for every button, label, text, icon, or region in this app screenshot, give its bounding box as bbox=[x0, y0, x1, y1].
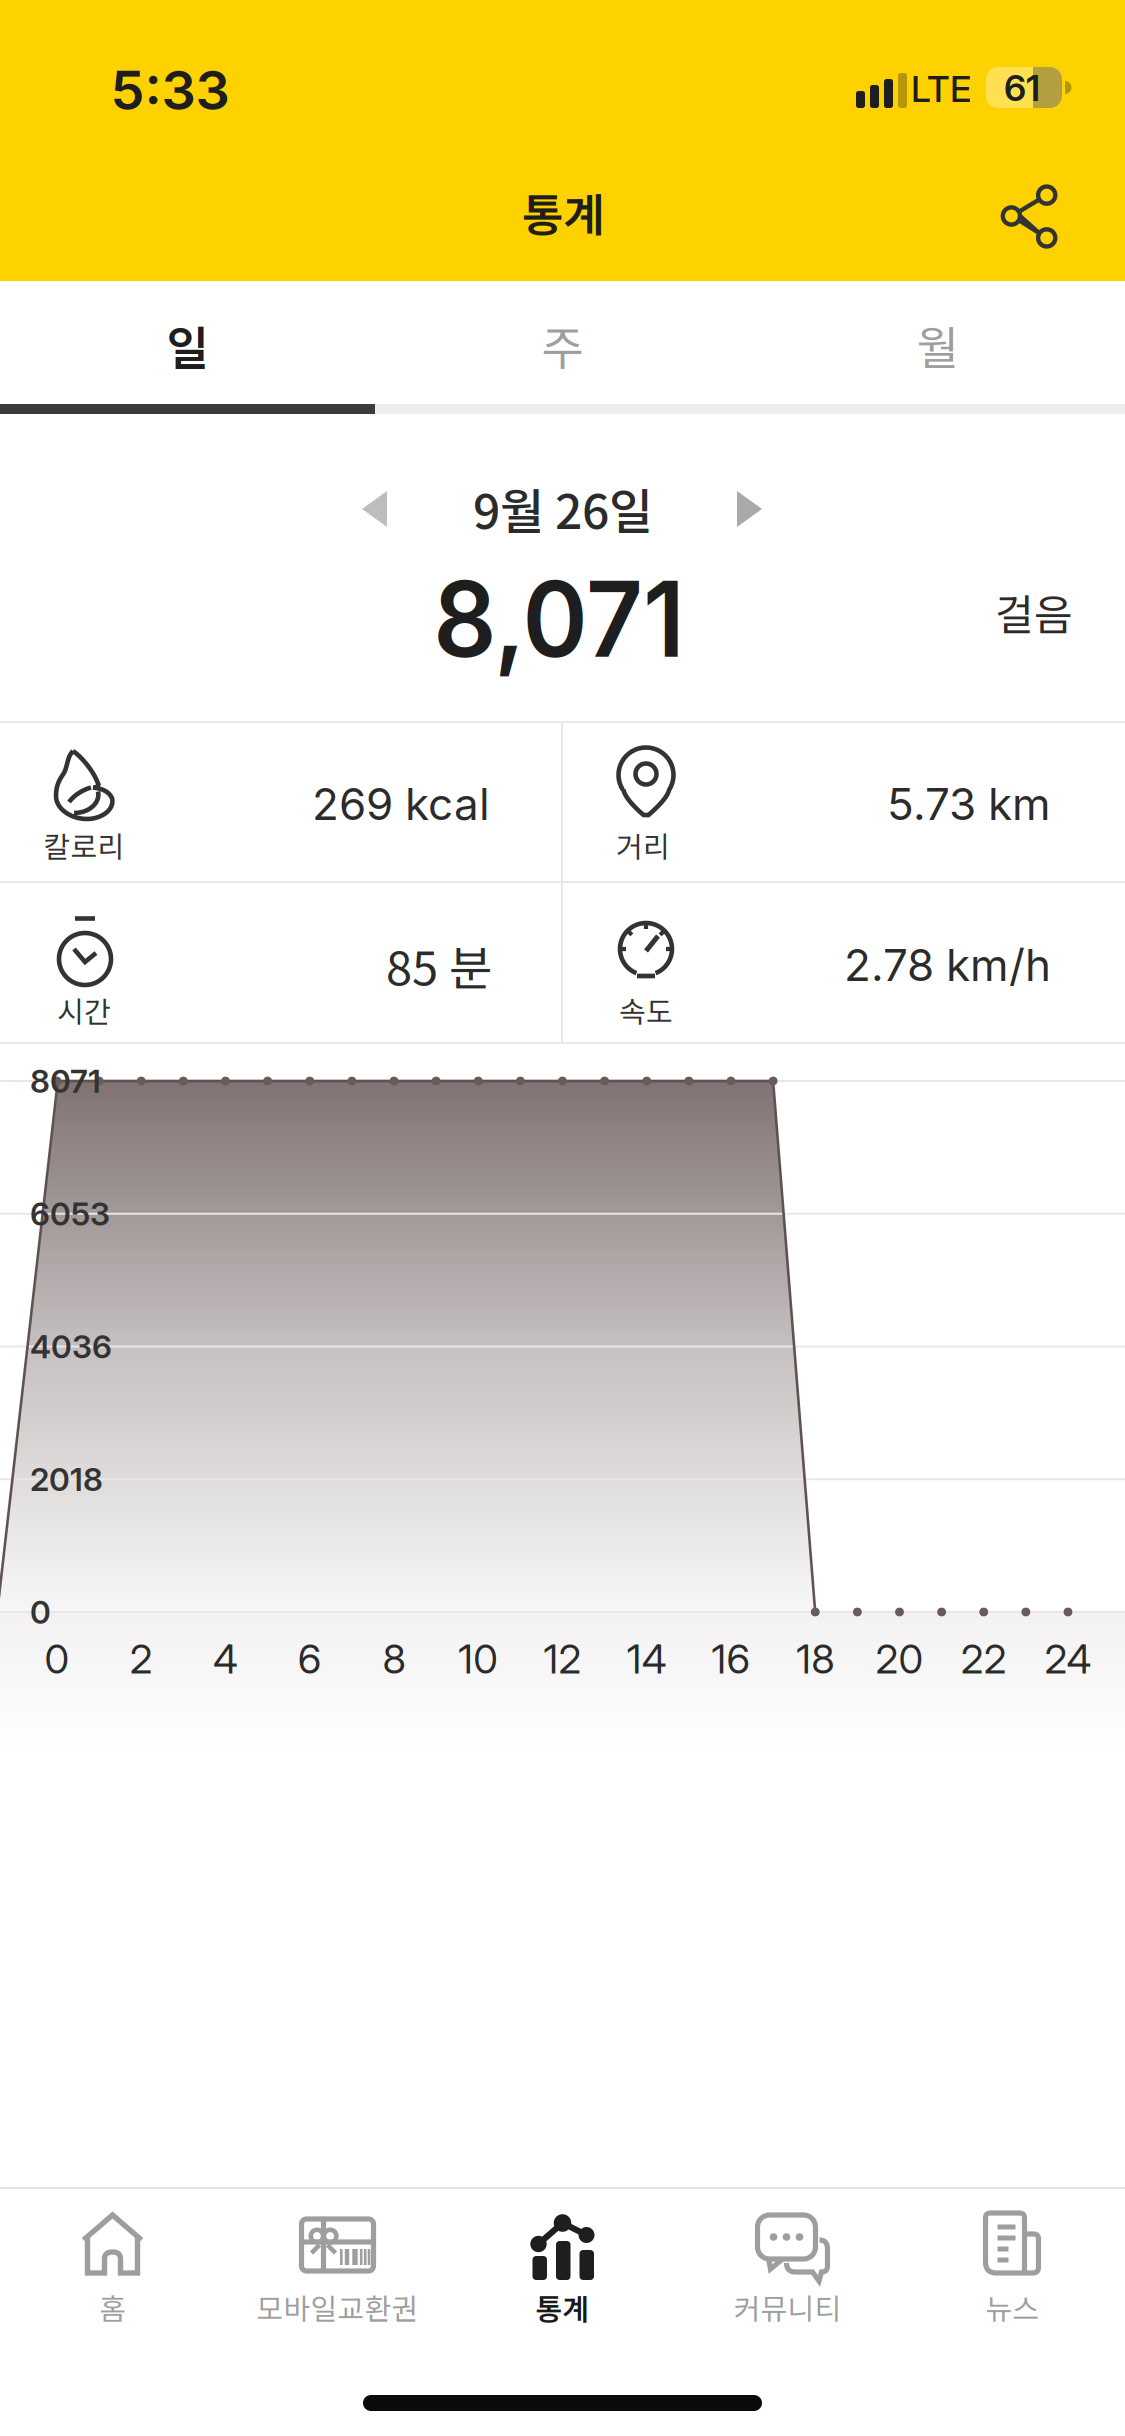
staticText: 2 bbox=[130, 1635, 153, 1683]
staticText: 6053 bbox=[30, 1194, 110, 1233]
button[interactable]: 주 bbox=[375, 284, 750, 406]
staticText: 16 bbox=[711, 1635, 750, 1683]
staticText: 10 bbox=[458, 1635, 498, 1683]
staticText: 20 bbox=[875, 1635, 923, 1683]
staticText: 거리 bbox=[616, 824, 670, 866]
staticText: 걸음 bbox=[995, 582, 1073, 642]
button[interactable]: 월 bbox=[750, 284, 1125, 406]
staticText: 월 bbox=[916, 312, 958, 378]
button[interactable]: Share bbox=[997, 183, 1061, 249]
staticText: LTE bbox=[911, 67, 971, 111]
button[interactable]: 홈 bbox=[0, 2199, 237, 2337]
button[interactable]: Previous day bbox=[361, 489, 389, 529]
staticText: 8071 bbox=[30, 1062, 101, 1100]
staticText: 6 bbox=[298, 1635, 322, 1683]
staticText: 일 bbox=[166, 312, 208, 378]
staticText: 269 kcal bbox=[312, 777, 490, 831]
staticText: 통계 bbox=[522, 179, 604, 245]
staticText: 시간 bbox=[57, 989, 111, 1031]
button[interactable]: 모바일교환권 bbox=[212, 2199, 462, 2337]
staticText: 5:33 bbox=[110, 57, 229, 123]
staticText: 홈 bbox=[99, 2286, 126, 2328]
staticText: 모바일교환권 bbox=[256, 2286, 418, 2328]
staticText: 칼로리 bbox=[43, 824, 124, 866]
staticText: 통계 bbox=[535, 2286, 589, 2328]
button[interactable]: 뉴스 bbox=[887, 2199, 1125, 2337]
staticText: 18 bbox=[796, 1635, 834, 1683]
button[interactable]: 일 bbox=[0, 284, 375, 406]
button[interactable]: 통계 bbox=[437, 2199, 687, 2337]
staticText: 9월 26일 bbox=[473, 473, 653, 543]
staticText: 61 bbox=[1004, 66, 1040, 110]
staticText: 0 bbox=[30, 1593, 51, 1631]
staticText: 24 bbox=[1044, 1635, 1091, 1683]
staticText: 8,071 bbox=[426, 556, 691, 682]
staticText: 14 bbox=[627, 1635, 667, 1683]
staticText: 12 bbox=[543, 1635, 581, 1683]
staticText: 5.73 km bbox=[887, 777, 1051, 831]
staticText: 85 분 bbox=[386, 931, 492, 999]
staticText: 2.78 km/h bbox=[844, 938, 1051, 992]
staticText: 커뮤니티 bbox=[733, 2286, 841, 2328]
staticText: 속도 bbox=[619, 989, 673, 1031]
button[interactable]: Next day bbox=[735, 489, 763, 529]
staticText: 뉴스 bbox=[985, 2286, 1039, 2328]
staticText: 4036 bbox=[30, 1327, 112, 1366]
staticText: 22 bbox=[961, 1635, 1007, 1683]
staticText: 8 bbox=[382, 1635, 405, 1683]
staticText: 2018 bbox=[30, 1460, 103, 1499]
staticText: 주 bbox=[541, 312, 583, 378]
staticText: 0 bbox=[44, 1635, 69, 1683]
button[interactable]: 커뮤니티 bbox=[662, 2199, 912, 2337]
staticText: 4 bbox=[213, 1635, 238, 1683]
